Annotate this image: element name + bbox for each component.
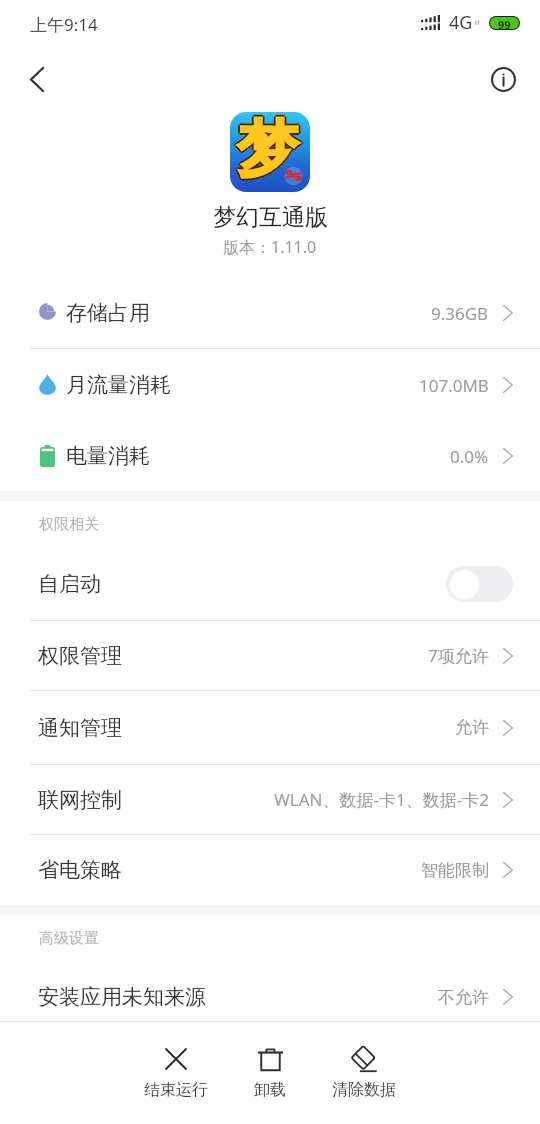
button[interactable]: 自启动 [0, 548, 540, 620]
staticText: 梦 [236, 112, 297, 189]
staticText: 梦 [235, 112, 296, 188]
button[interactable]: App info [481, 57, 525, 101]
staticText: 107.0MB [419, 374, 489, 397]
staticText: 梦 [236, 112, 297, 187]
staticText: 99 [498, 17, 511, 29]
button[interactable]: 权限管理 [0, 621, 540, 690]
staticText: 存储占用 [66, 300, 150, 326]
staticText: 4G [449, 10, 473, 35]
staticText: 月流量消耗 [66, 372, 171, 398]
staticText: 梦 [237, 112, 298, 188]
staticText: 梦 [237, 112, 298, 186]
staticText: 通知管理 [38, 715, 122, 741]
staticText: 7项允许 [428, 644, 489, 667]
staticText: 联网控制 [38, 787, 122, 813]
button[interactable]: 结束运行 [129, 1046, 223, 1100]
staticText: 结束运行 [144, 1080, 208, 1100]
staticText: 安装应用未知来源 [38, 984, 206, 1010]
staticText: 9.36GB [431, 302, 489, 325]
button[interactable]: 联网控制 [0, 765, 540, 834]
staticText: 梦 [238, 112, 299, 187]
button[interactable]: 通知管理 [0, 691, 540, 764]
staticText: 智能限制 [421, 860, 489, 881]
staticText: 梦 [238, 112, 299, 189]
button[interactable]: 卸载 [223, 1046, 317, 1100]
staticText: 权限管理 [38, 643, 122, 669]
button[interactable]: 存储占用 [0, 278, 540, 348]
staticText: 梦幻互通版 [213, 203, 328, 232]
staticText: 权限相关 [39, 515, 99, 534]
staticText: 不允许 [438, 987, 489, 1008]
button[interactable]: 安装应用未知来源 [0, 962, 540, 1032]
button[interactable]: 电量消耗 [0, 421, 540, 491]
staticText: 卸载 [254, 1080, 286, 1100]
staticText: 自启动 [38, 571, 101, 597]
button[interactable]: 月流量消耗 [0, 349, 540, 421]
staticText: 版本：1.11.0 [223, 236, 317, 258]
staticText: 清除数据 [332, 1080, 396, 1100]
button[interactable]: 省电策略 [0, 835, 540, 905]
staticText: 高级设置 [39, 929, 99, 948]
staticText: 梦 [237, 113, 298, 190]
staticText: 允许 [455, 717, 489, 738]
staticText: 省电策略 [38, 857, 122, 883]
staticText: 上午9:14 [30, 13, 98, 36]
staticText: WLAN、数据-卡1、数据-卡2 [274, 788, 489, 811]
button[interactable]: 清除数据 [317, 1046, 411, 1100]
staticText: 0.0% [450, 445, 489, 468]
staticText: 梦 [239, 112, 300, 188]
button[interactable]: Back [13, 55, 61, 103]
staticText: 电量消耗 [66, 443, 150, 469]
